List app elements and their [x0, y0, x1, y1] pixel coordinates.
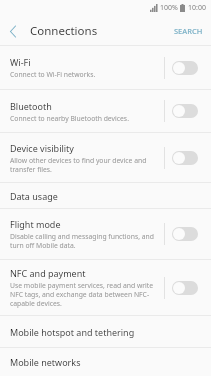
button[interactable]: Back	[0, 18, 26, 44]
button[interactable]: Device visibility	[0, 133, 211, 182]
staticText: 100%	[160, 3, 178, 13]
staticText: Use mobile payment services, read and wr…	[10, 281, 164, 308]
staticText: Disable calling and messaging functions,…	[10, 232, 164, 250]
staticText: Connect to nearby Bluetooth devices.	[10, 114, 129, 123]
staticText: Mobile hotspot and tethering	[10, 326, 135, 338]
staticText: Data usage	[10, 190, 58, 202]
staticText: Bluetooth	[10, 100, 52, 112]
button[interactable]: Bluetooth	[0, 90, 211, 132]
staticText: 10:00	[188, 3, 206, 13]
staticText: Connections	[30, 23, 98, 39]
button[interactable]: Wi-Fi	[0, 46, 211, 89]
staticText: SEARCH	[174, 26, 203, 36]
staticText: Allow other devices to find your device …	[10, 156, 164, 174]
button[interactable]: Bluetooth toggle	[165, 98, 205, 124]
staticText: Mobile networks	[10, 356, 81, 368]
button[interactable]: NFC and payment toggle	[165, 275, 205, 301]
button[interactable]: Data usage	[0, 183, 211, 208]
button[interactable]: Device visibility toggle	[165, 145, 205, 171]
staticText: NFC and payment	[10, 267, 86, 279]
button[interactable]: Mobile hotspot and tethering	[0, 316, 211, 347]
button[interactable]: Flight mode	[0, 209, 211, 259]
staticText: Connect to Wi-Fi networks.	[10, 70, 96, 79]
button[interactable]: Wi-Fi toggle	[165, 55, 205, 81]
button[interactable]: Flight mode toggle	[165, 221, 205, 247]
staticText: Flight mode	[10, 218, 61, 230]
staticText: Device visibility	[10, 142, 74, 154]
button[interactable]: Mobile networks	[0, 348, 211, 376]
button[interactable]: SEARCH	[166, 20, 211, 42]
staticText: Wi-Fi	[10, 56, 31, 68]
button[interactable]: NFC and payment	[0, 260, 211, 315]
